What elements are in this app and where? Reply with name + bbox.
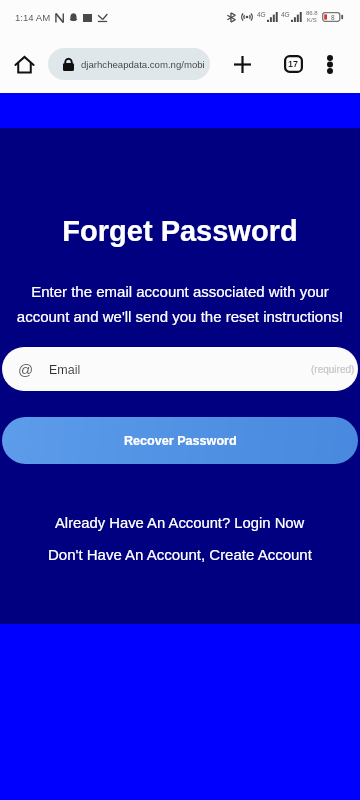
- staticText: 4G: [281, 11, 290, 18]
- button[interactable]: @: [2, 347, 358, 391]
- staticText: @: [18, 361, 34, 378]
- button[interactable]: Don't Have An Account, Create Account: [0, 541, 360, 567]
- staticText: Don't Have An Account, Create Account: [48, 546, 312, 563]
- button[interactable]: djarhcheapdata.com.ng/mobi: [48, 48, 210, 80]
- staticText: 1:14 AM: [15, 12, 51, 23]
- staticText: Email: [49, 363, 81, 377]
- button[interactable]: Home: [8, 48, 40, 80]
- staticText: djarhcheapdata.com.ng/mobi: [81, 59, 205, 70]
- staticText: 17: [288, 59, 299, 69]
- staticText: K/S: [307, 17, 317, 24]
- staticText: Already Have An Account? Login Now: [55, 515, 305, 532]
- button[interactable]: More options: [314, 48, 346, 80]
- button[interactable]: Tabs: [278, 49, 308, 79]
- staticText: (required): [311, 364, 355, 375]
- staticText: Enter the email account associated with …: [8, 283, 352, 325]
- staticText: 86.8: [306, 10, 318, 17]
- button[interactable]: New tab: [225, 47, 259, 81]
- staticText: 4G: [257, 11, 266, 18]
- staticText: Recover Password: [124, 434, 237, 448]
- staticText: Forget Password: [0, 215, 360, 247]
- button[interactable]: Already Have An Account? Login Now: [0, 510, 360, 536]
- staticText: 8: [331, 14, 335, 21]
- button[interactable]: Recover Password: [2, 417, 358, 464]
